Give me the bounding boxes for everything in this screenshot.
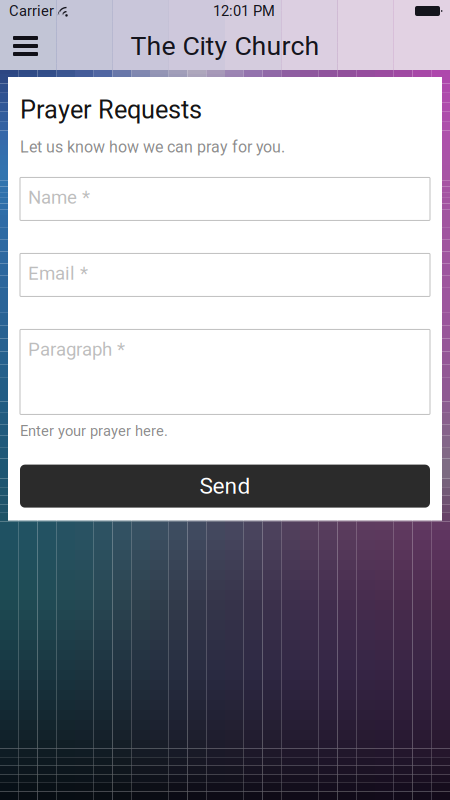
button[interactable]: Menu [0, 22, 51, 70]
staticText: The City Church [130, 30, 319, 62]
staticText: Name * [28, 186, 90, 208]
staticText: Enter your prayer here. [20, 422, 168, 440]
staticText: Carrier [9, 2, 54, 20]
staticText: Let us know how we can pray for you. [20, 138, 285, 156]
staticText: Send [199, 473, 250, 499]
staticText: Email * [28, 262, 88, 284]
staticText: Prayer Requests [20, 95, 202, 125]
staticText: 12:01 PM [213, 2, 275, 20]
button[interactable]: Send [20, 465, 430, 508]
staticText: Paragraph * [28, 338, 125, 360]
